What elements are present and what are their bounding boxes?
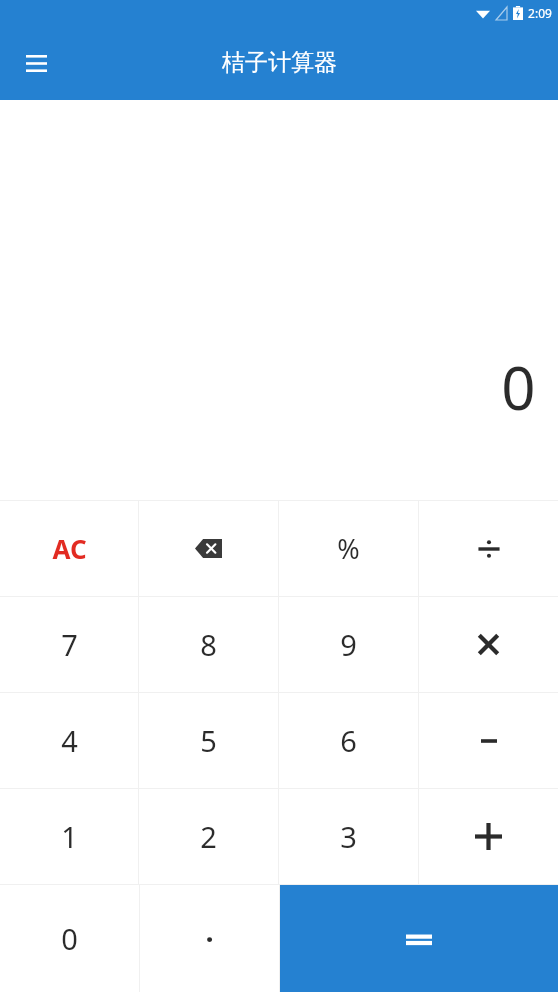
button[interactable]: Plus	[419, 789, 558, 884]
button[interactable]: ·	[140, 885, 279, 992]
button[interactable]: Multiply	[419, 597, 558, 692]
staticText: 2	[200, 817, 217, 856]
staticText: 0	[61, 919, 78, 958]
staticText: 8	[200, 625, 217, 664]
staticText: 6	[340, 721, 357, 760]
button[interactable]: Minus	[419, 693, 558, 788]
staticText: %	[337, 530, 360, 567]
button[interactable]: Equals	[280, 885, 558, 992]
staticText: 1	[61, 817, 78, 856]
staticText: AC	[52, 531, 87, 566]
button[interactable]: AC	[0, 501, 138, 596]
button[interactable]: 4	[0, 693, 138, 788]
button[interactable]: 9	[279, 597, 418, 692]
button[interactable]: Divide	[419, 501, 558, 596]
button[interactable]: 1	[0, 789, 138, 884]
staticText: 0	[501, 346, 536, 428]
button[interactable]: 6	[279, 693, 418, 788]
button[interactable]: 5	[139, 693, 278, 788]
button[interactable]: 0	[0, 885, 139, 992]
staticText: 4	[61, 721, 78, 760]
staticText: 2:09	[528, 5, 552, 21]
staticText: 9	[340, 625, 357, 664]
staticText: 7	[61, 625, 78, 664]
button[interactable]: 2	[139, 789, 278, 884]
button[interactable]: 7	[0, 597, 138, 692]
staticText: 桔子计算器	[222, 48, 337, 77]
button[interactable]: 8	[139, 597, 278, 692]
staticText: ·	[205, 919, 214, 958]
button[interactable]: 3	[279, 789, 418, 884]
staticText: 3	[340, 817, 357, 856]
button[interactable]: Backspace	[139, 501, 278, 596]
button[interactable]: %	[279, 501, 418, 596]
button[interactable]: Menu	[12, 39, 60, 87]
staticText: 5	[200, 721, 217, 760]
